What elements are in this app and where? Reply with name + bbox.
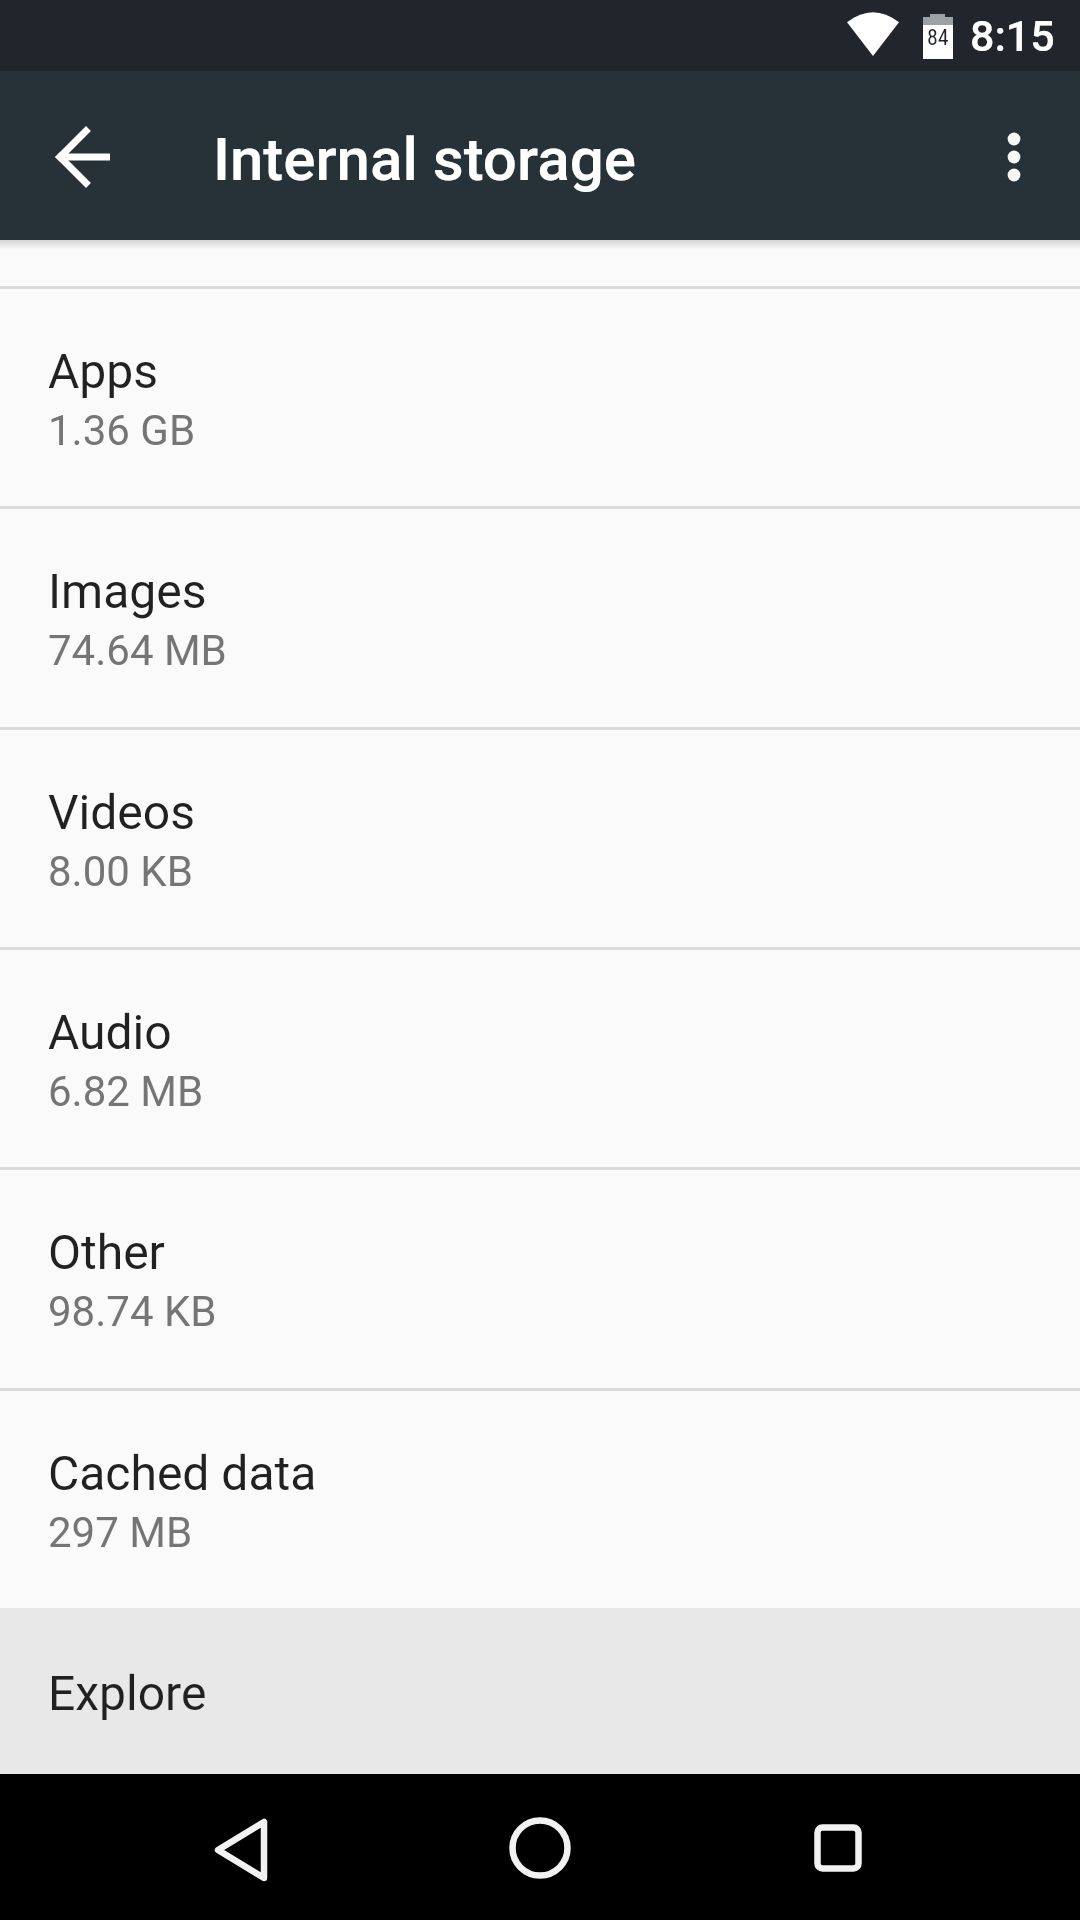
staticText: 74.64 MB — [48, 626, 227, 675]
button[interactable]: Videos — [0, 730, 1080, 947]
button[interactable] — [40, 113, 128, 201]
staticText: 8.00 KB — [48, 847, 193, 896]
staticText: Internal storage — [213, 124, 636, 194]
button[interactable]: Audio — [0, 950, 1080, 1167]
staticText: Images — [48, 563, 207, 619]
staticText: Other — [48, 1224, 165, 1280]
staticText: 1.36 GB — [48, 406, 196, 455]
staticText: 6.82 MB — [48, 1067, 204, 1116]
button[interactable] — [477, 1784, 603, 1910]
staticText: 98.74 KB — [48, 1287, 217, 1336]
staticText: 8:15 — [970, 11, 1055, 61]
button[interactable] — [178, 1784, 304, 1910]
staticText: Explore — [48, 1665, 207, 1721]
staticText: 84 — [927, 25, 949, 51]
staticText: Audio — [48, 1004, 172, 1060]
staticText: Videos — [48, 784, 195, 840]
button[interactable]: Other — [0, 1170, 1080, 1388]
button[interactable]: Explore — [0, 1608, 1080, 1774]
staticText: 297 MB — [48, 1508, 193, 1557]
staticText: Cached data — [48, 1445, 317, 1501]
staticText: Apps — [48, 343, 158, 399]
button[interactable]: Images — [0, 509, 1080, 727]
button[interactable] — [984, 102, 1044, 212]
button[interactable]: Apps — [0, 289, 1080, 506]
button[interactable] — [775, 1784, 901, 1910]
button[interactable]: Cached data — [0, 1391, 1080, 1608]
